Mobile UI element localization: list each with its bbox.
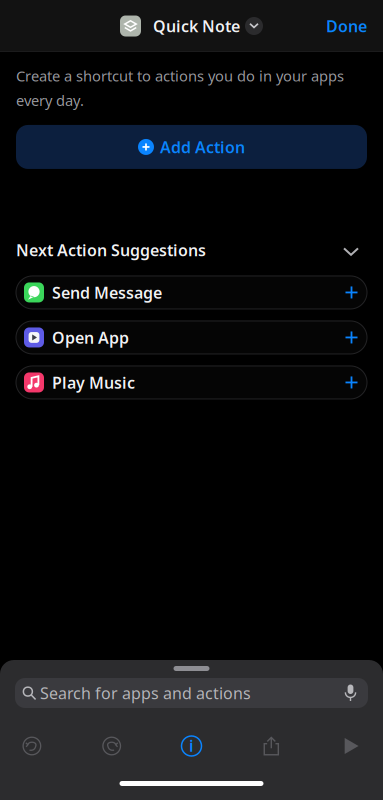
button[interactable]: Share (231, 729, 311, 763)
button[interactable]: Open App (16, 321, 367, 354)
staticText: Create a shortcut to actions you do in y… (16, 66, 344, 110)
button[interactable]: Details (152, 729, 231, 763)
staticText: Send Message (52, 282, 162, 303)
button[interactable]: Next Action Suggestions (0, 239, 383, 261)
button[interactable]: Add Action (16, 125, 367, 169)
button[interactable]: Play Music (16, 366, 367, 399)
button[interactable]: Run (311, 729, 383, 763)
staticText: Next Action Suggestions (16, 239, 206, 260)
button[interactable]: Send Message (16, 276, 367, 309)
staticText: Add Action (160, 136, 245, 157)
staticText: Done (326, 15, 367, 37)
button[interactable]: Done (310, 4, 383, 48)
button[interactable]: Redo (72, 729, 152, 763)
button[interactable]: Quick Note (120, 6, 263, 46)
staticText: i (189, 735, 194, 756)
button[interactable]: Undo (0, 729, 72, 763)
staticText: Search for apps and actions (40, 682, 251, 704)
staticText: Quick Note (153, 15, 240, 37)
staticText: Play Music (52, 372, 135, 393)
staticText: Open App (52, 327, 129, 348)
